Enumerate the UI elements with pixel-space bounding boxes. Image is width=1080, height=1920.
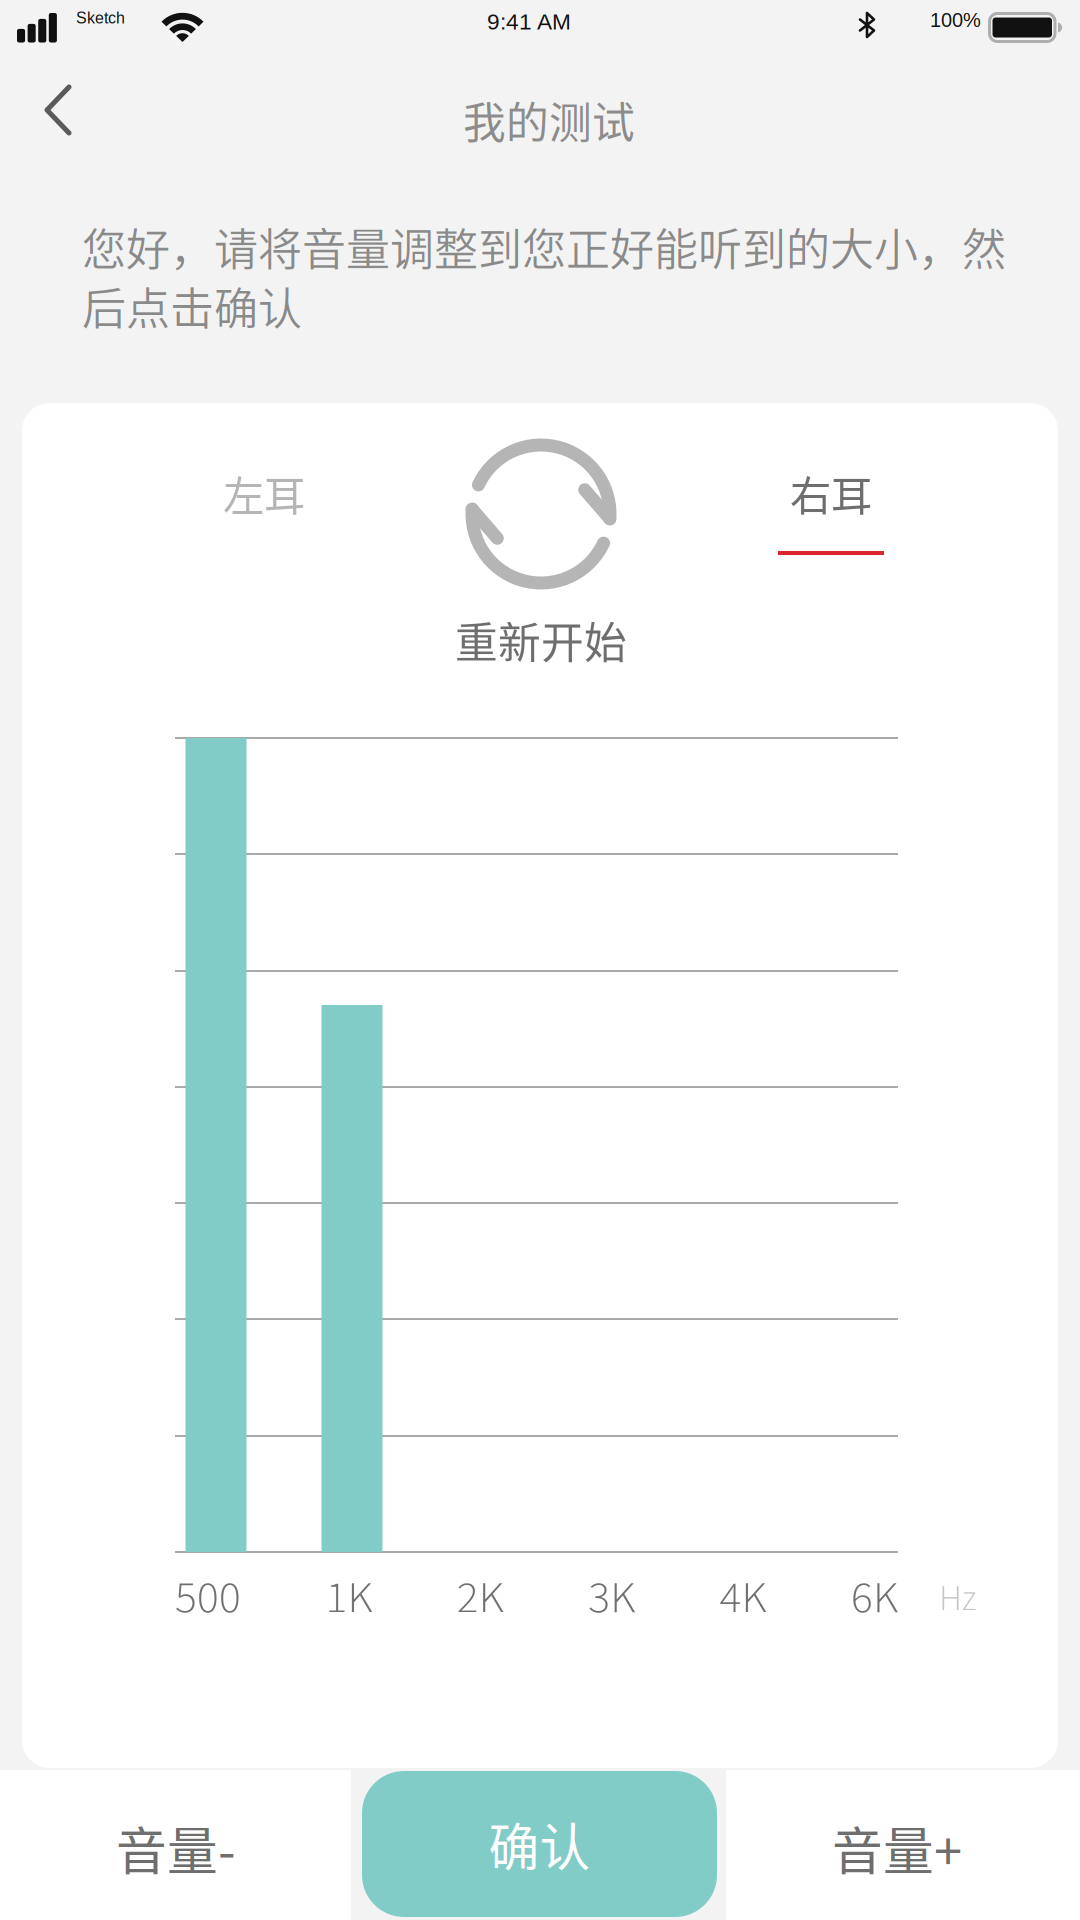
staticText: 4K xyxy=(720,1566,767,1630)
staticText: 左耳 xyxy=(223,463,305,523)
staticText: Sketch xyxy=(76,9,125,27)
staticText: 100% xyxy=(930,9,981,31)
staticText: 您好，请将音量调整到您正好能听到的大小，然后点击确认 xyxy=(82,217,1006,335)
staticText: 重新开始 xyxy=(455,609,627,671)
staticText: 1K xyxy=(325,1566,372,1630)
staticText: 3K xyxy=(588,1566,635,1630)
staticText: Hz xyxy=(939,1573,977,1625)
button[interactable]: 左耳 xyxy=(164,465,364,575)
button[interactable]: 音量- xyxy=(116,1820,456,1920)
button[interactable]: 确认 xyxy=(362,1771,717,1917)
staticText: 2K xyxy=(457,1566,504,1630)
button[interactable]: 音量+ xyxy=(837,1820,1080,1920)
button[interactable]: Back xyxy=(0,62,108,158)
staticText: 6K xyxy=(851,1566,898,1630)
staticText: 音量- xyxy=(116,1811,236,1885)
staticText: 右耳 xyxy=(790,463,872,523)
button[interactable]: 重新开始 xyxy=(401,432,681,668)
staticText: 音量+ xyxy=(832,1811,962,1885)
staticText: 我的测试 xyxy=(463,89,635,151)
button[interactable]: 右耳 xyxy=(731,465,931,575)
staticText: 500 xyxy=(175,1566,241,1630)
staticText: 9:41 AM xyxy=(487,9,571,34)
staticText: 确认 xyxy=(488,1807,590,1881)
